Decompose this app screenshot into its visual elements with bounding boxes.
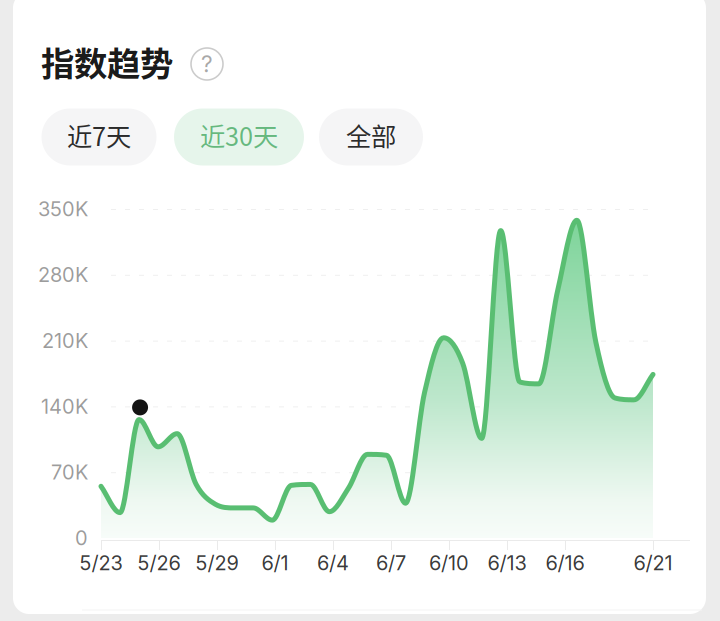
staticText: 全部	[346, 117, 396, 153]
staticText: 指数趋势	[41, 37, 173, 86]
staticText: 近7天	[67, 117, 131, 153]
staticText: ?	[201, 50, 213, 78]
button[interactable]: 说明	[191, 48, 223, 80]
button[interactable]: 近30天	[174, 108, 304, 165]
staticText: 0	[75, 526, 88, 550]
staticText: 6/13	[487, 551, 526, 575]
staticText: 6/7	[376, 551, 406, 575]
staticText: 280K	[38, 263, 88, 287]
staticText: 6/21	[633, 551, 672, 575]
staticText: 210K	[42, 328, 88, 353]
staticText: 6/16	[545, 551, 584, 575]
staticText: 5/23	[79, 551, 122, 575]
staticText: 140K	[41, 394, 88, 418]
staticText: 70K	[51, 460, 88, 484]
staticText: 近30天	[200, 117, 278, 153]
staticText: 5/29	[195, 551, 238, 575]
staticText: 6/10	[429, 551, 469, 575]
staticText: 5/26	[137, 551, 180, 575]
staticText: 6/1	[261, 551, 288, 575]
button[interactable]: 全部	[319, 108, 423, 165]
staticText: 350K	[38, 197, 88, 221]
button[interactable]: 近7天	[41, 108, 156, 165]
staticText: 6/4	[317, 551, 349, 575]
